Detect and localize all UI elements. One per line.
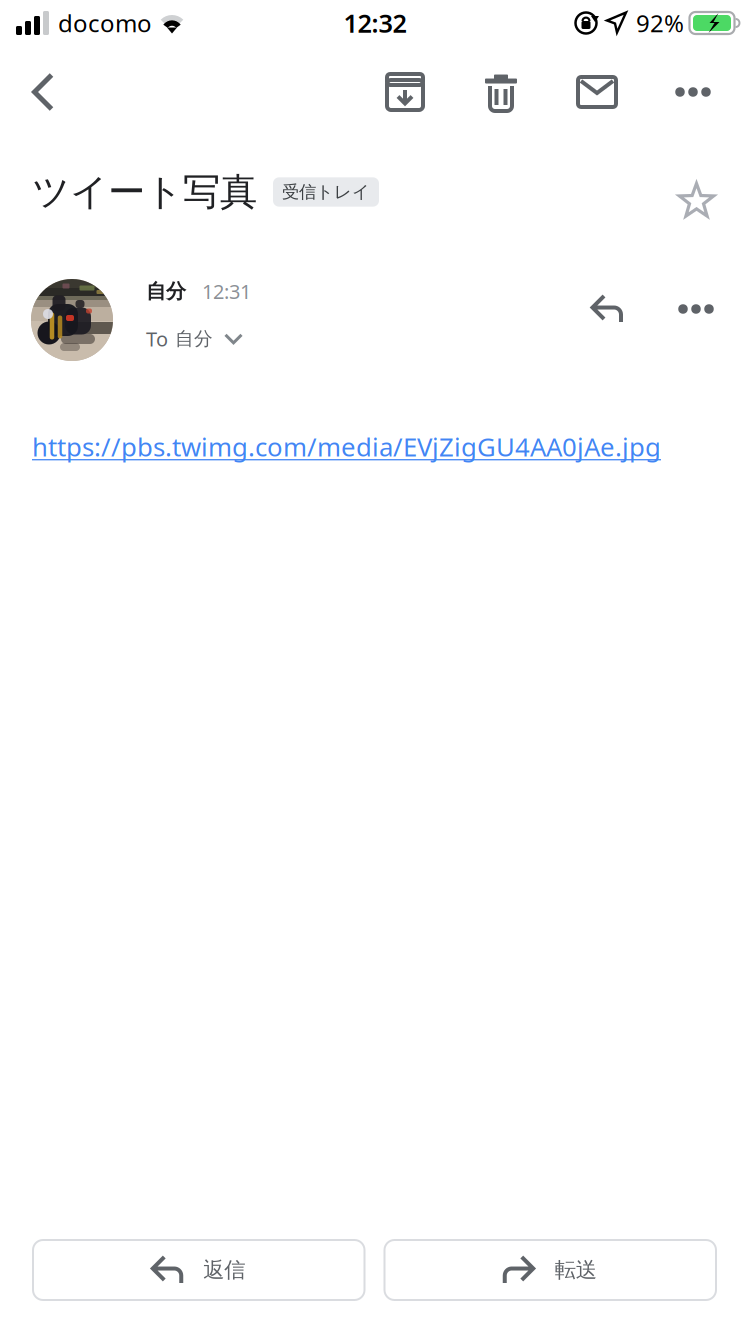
button[interactable]: To [146,326,243,352]
staticText: To [146,326,168,352]
button[interactable]: More [650,278,742,340]
staticText: 12:32 [343,6,406,40]
staticText: 転送 [555,1257,597,1283]
button[interactable]: 転送 [384,1240,716,1300]
button[interactable]: Reply [564,278,650,340]
staticText: 12:31 [202,278,251,305]
staticText: 受信トレイ [282,181,370,203]
staticText: ツイート写真 [32,169,257,215]
button[interactable]: Back [0,50,86,134]
staticText: 自分 [175,327,213,350]
button[interactable]: More options [645,50,741,134]
staticText: 92% [636,7,684,39]
staticText: docomo [58,7,152,39]
button[interactable]: Archive [357,50,453,134]
staticText: https://pbs.twimg.com/media/EVjZigGU4AA0… [32,429,661,464]
button[interactable]: https://pbs.twimg.com/media/EVjZigGU4AA0… [32,429,661,464]
button[interactable]: Mark unread [549,50,645,134]
staticText: 自分 [146,279,186,304]
staticText: 返信 [203,1257,245,1283]
button[interactable]: 返信 [33,1240,364,1300]
button[interactable]: Star [675,164,727,220]
button[interactable]: Delete [453,50,549,134]
